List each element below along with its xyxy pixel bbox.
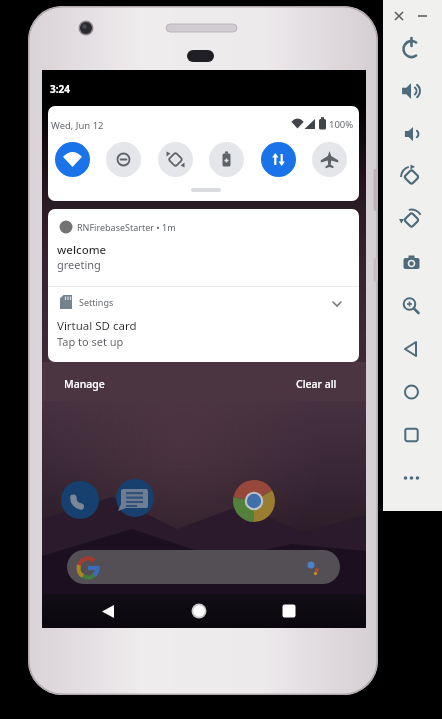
button[interactable] [393, 416, 431, 454]
button[interactable]: RNFirebaseStarter • 1m [48, 209, 359, 286]
staticText: welcome [57, 242, 107, 258]
button[interactable] [389, 6, 409, 26]
button[interactable] [67, 550, 340, 584]
button[interactable] [209, 142, 244, 177]
button[interactable] [261, 142, 296, 177]
button[interactable] [90, 596, 126, 626]
button[interactable] [393, 158, 431, 196]
button[interactable]: Clear all [286, 370, 352, 394]
button[interactable] [393, 459, 431, 497]
button[interactable] [181, 596, 217, 626]
button[interactable] [393, 287, 431, 325]
staticText: Manage [64, 377, 105, 391]
button[interactable] [393, 244, 431, 282]
staticText: 100% [329, 118, 354, 131]
staticText: greeting [57, 257, 101, 272]
button[interactable] [61, 481, 99, 519]
button[interactable] [271, 596, 307, 626]
button[interactable] [158, 142, 193, 177]
button[interactable] [116, 479, 154, 517]
button[interactable]: Manage [56, 370, 116, 394]
button[interactable] [55, 142, 90, 177]
button[interactable]: Settings [48, 286, 359, 362]
button[interactable] [413, 6, 433, 26]
button[interactable] [312, 142, 347, 177]
button[interactable] [106, 142, 141, 177]
staticText: 3:24 [50, 82, 70, 96]
button[interactable] [393, 201, 431, 239]
button[interactable] [393, 115, 431, 153]
button[interactable] [393, 330, 431, 368]
staticText: Tap to set up [57, 334, 124, 349]
staticText: Settings [79, 296, 114, 308]
staticText: Wed, Jun 12 [51, 119, 104, 132]
button[interactable] [393, 72, 431, 110]
staticText: Clear all [296, 377, 337, 391]
button[interactable] [393, 29, 431, 67]
staticText: RNFirebaseStarter • 1m [77, 221, 176, 233]
button[interactable] [393, 373, 431, 411]
staticText: Virtual SD card [57, 318, 137, 334]
button[interactable] [232, 479, 276, 523]
